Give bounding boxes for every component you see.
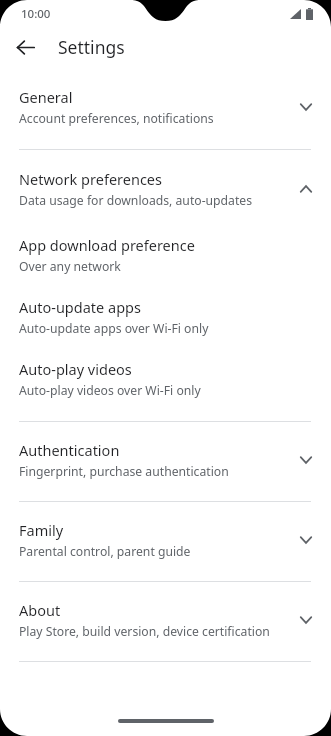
button[interactable]: Auto-play videos: [0, 359, 331, 399]
staticText: About: [19, 600, 61, 620]
staticText: Over any network: [19, 258, 121, 275]
button[interactable]: Authentication: [0, 440, 331, 480]
button[interactable]: Back: [9, 31, 41, 63]
staticText: Network preferences: [19, 169, 162, 189]
button[interactable]: Family: [0, 520, 331, 560]
staticText: Auto-update apps over Wi-Fi only: [19, 320, 209, 337]
staticText: Auto-play videos: [19, 359, 132, 379]
staticText: Data usage for downloads, auto-updates: [19, 192, 253, 209]
staticText: Play Store, build version, device certif…: [19, 623, 270, 640]
button[interactable]: Network preferences: [0, 169, 331, 209]
staticText: Fingerprint, purchase authentication: [19, 463, 229, 480]
button[interactable]: General: [0, 87, 331, 127]
staticText: Account preferences, notifications: [19, 110, 214, 127]
button[interactable]: About: [0, 600, 331, 640]
staticText: Auto-play videos over Wi-Fi only: [19, 382, 201, 399]
staticText: App download preference: [19, 235, 195, 255]
button[interactable]: App download preference: [0, 235, 331, 275]
button[interactable]: Auto-update apps: [0, 297, 331, 337]
staticText: 10:00: [21, 6, 51, 22]
staticText: Auto-update apps: [19, 297, 141, 317]
staticText: Family: [19, 520, 64, 540]
staticText: Settings: [58, 35, 125, 59]
staticText: General: [19, 87, 73, 107]
staticText: Parental control, parent guide: [19, 543, 191, 560]
staticText: Authentication: [19, 440, 120, 460]
